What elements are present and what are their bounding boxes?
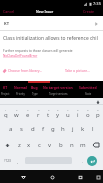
- staticText: c: [38, 141, 41, 149]
- button[interactable]: z: [14, 137, 24, 153]
- staticText: ,: [17, 159, 19, 164]
- button[interactable]: 3: [22, 105, 33, 121]
- button[interactable]: 7: [63, 105, 73, 121]
- button[interactable]: More suggestions: [96, 100, 100, 104]
- staticText: h: [61, 125, 65, 133]
- staticText: 6: [57, 108, 59, 111]
- button[interactable]: k: [78, 121, 88, 137]
- staticText: s: [20, 125, 23, 133]
- staticText: Normal: [14, 85, 27, 90]
- button[interactable]: s: [16, 121, 27, 137]
- button[interactable]: No target version: [43, 85, 73, 96]
- button[interactable]: ?123: [0, 153, 14, 169]
- button[interactable]: Shift: [0, 137, 14, 153]
- staticText: 9: [87, 108, 89, 111]
- staticText: Target versions: [49, 92, 68, 96]
- staticText: 3: [27, 108, 29, 111]
- staticText: l: [92, 125, 94, 133]
- button[interactable]: Recents: [74, 171, 86, 183]
- staticText: 1: [5, 108, 7, 111]
- button[interactable]: d: [27, 121, 38, 137]
- button[interactable]: Normal: [14, 85, 27, 96]
- staticText: Cancel: [3, 9, 15, 14]
- staticText: k: [81, 125, 85, 133]
- staticText: u: [66, 111, 70, 119]
- button[interactable]: Cancel: [0, 9, 18, 14]
- staticText: 7: [67, 108, 69, 111]
- staticText: 7:35: [93, 1, 101, 6]
- button[interactable]: n: [66, 137, 77, 153]
- button[interactable]: l: [88, 121, 98, 137]
- staticText: t: [47, 111, 50, 119]
- staticText: q: [4, 111, 8, 119]
- staticText: e: [26, 111, 30, 119]
- staticText: i: [77, 111, 79, 119]
- staticText: g: [51, 125, 55, 133]
- staticText: z: [18, 141, 21, 149]
- button[interactable]: 5: [43, 105, 53, 121]
- staticText: w: [14, 111, 19, 119]
- staticText: x: [27, 141, 31, 149]
- button[interactable]: Enter: [87, 156, 97, 166]
- staticText: 5: [48, 108, 50, 111]
- button[interactable]: Hide keyboard: [17, 171, 29, 183]
- staticText: 4: [38, 108, 40, 111]
- button[interactable]: ,: [13, 153, 22, 169]
- staticText: 0: [97, 108, 99, 111]
- staticText: a: [9, 125, 13, 133]
- button[interactable]: Create: [80, 9, 103, 14]
- staticText: KT: [3, 85, 8, 90]
- staticText: ?123: [4, 159, 11, 163]
- staticText: State: [85, 92, 92, 96]
- button[interactable]: 8: [73, 105, 83, 121]
- button[interactable]: Bug: [31, 85, 38, 96]
- button[interactable]: 0: [93, 105, 103, 121]
- staticText: 8: [77, 108, 79, 111]
- button[interactable]: NoClassDefFoundError: [3, 54, 38, 58]
- button[interactable]: 4: [33, 105, 43, 121]
- button[interactable]: m: [77, 137, 88, 153]
- button[interactable]: Submitted: [79, 85, 97, 96]
- button[interactable]: KT: [1, 85, 10, 96]
- staticText: .: [82, 159, 84, 164]
- staticText: Submitted: [79, 85, 97, 90]
- staticText: b: [59, 141, 63, 149]
- staticText: j: [72, 125, 74, 133]
- button[interactable]: 9: [83, 105, 93, 121]
- button[interactable]: f: [38, 121, 48, 137]
- button[interactable]: b: [55, 137, 66, 153]
- staticText: Further requests to those classes will g…: [3, 49, 73, 53]
- button[interactable]: h: [58, 121, 68, 137]
- staticText: Project: [1, 92, 10, 96]
- staticText: o: [86, 111, 90, 119]
- button[interactable]: c: [34, 137, 44, 153]
- button[interactable]: 6: [53, 105, 63, 121]
- button[interactable]: 2: [11, 105, 22, 121]
- button[interactable]: Home: [46, 171, 58, 183]
- staticText: Bug: [31, 85, 38, 90]
- staticText: No target version: [43, 85, 73, 90]
- button[interactable]: KT: [0, 16, 103, 31]
- button[interactable]: 1: [0, 105, 11, 121]
- staticText: Type: [32, 92, 38, 96]
- button[interactable]: Take a picture...: [65, 68, 90, 73]
- button[interactable]: Backspace: [88, 137, 103, 153]
- staticText: f: [42, 125, 45, 133]
- staticText: d: [31, 125, 35, 133]
- staticText: Class initialization allows to reference…: [3, 35, 98, 42]
- button[interactable]: Switch keyboard: [96, 175, 100, 179]
- button[interactable]: j: [68, 121, 78, 137]
- staticText: y: [56, 111, 60, 119]
- button[interactable]: v: [44, 137, 55, 153]
- staticText: m: [80, 141, 86, 149]
- staticText: p: [96, 111, 100, 119]
- staticText: 2: [16, 108, 18, 111]
- button[interactable]: a: [5, 121, 16, 137]
- button[interactable]: x: [24, 137, 34, 153]
- staticText: r: [37, 111, 40, 119]
- button[interactable]: .: [77, 153, 88, 169]
- button[interactable]: g: [48, 121, 58, 137]
- staticText: n: [70, 141, 74, 149]
- button[interactable]: Choose from library...: [8, 68, 43, 73]
